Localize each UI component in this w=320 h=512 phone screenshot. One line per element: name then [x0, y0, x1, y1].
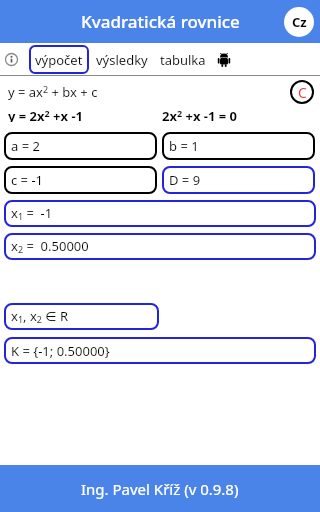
staticText: y = ax2 + bx + c	[8, 83, 98, 101]
staticText: 2x2 +x -1 = 0	[162, 107, 238, 122]
staticText: K = {-1; 0.50000}	[11, 342, 110, 360]
staticText: x1, x2 ∈ R	[11, 307, 69, 326]
button[interactable]	[5, 53, 18, 66]
staticText: C	[298, 83, 307, 102]
staticText: c = -1	[11, 171, 44, 189]
button[interactable]: D = 9	[162, 166, 315, 194]
staticText: Kvadratická rovnice	[81, 10, 240, 33]
staticText: x2 = 0.50000	[11, 237, 89, 256]
button[interactable]: x1 = -1	[4, 200, 316, 227]
button[interactable]: výsledky	[96, 51, 148, 69]
button[interactable]: výpočet	[29, 45, 89, 74]
staticText: výpočet	[35, 51, 83, 69]
staticText: Ing. Pavel Kříž (v 0.9.8)	[81, 479, 239, 499]
staticText: x1 = -1	[11, 204, 53, 223]
button[interactable]: Ing. Pavel Kříž (v 0.9.8)	[0, 465, 320, 512]
button[interactable]: Cz	[284, 7, 314, 37]
staticText: b = 1	[169, 137, 199, 155]
button[interactable]: c = -1	[4, 166, 157, 194]
staticText: tabulka	[160, 51, 206, 69]
button[interactable]: x2 = 0.50000	[4, 233, 316, 260]
staticText: D = 9	[169, 171, 201, 189]
button[interactable]: a = 2	[4, 132, 157, 160]
button[interactable]: C	[290, 80, 314, 104]
button[interactable]: x1, x2 ∈ R	[4, 303, 159, 330]
staticText: Cz	[292, 13, 307, 31]
button[interactable]: K = {-1; 0.50000}	[4, 337, 316, 364]
staticText: a = 2	[11, 137, 40, 155]
button[interactable]	[217, 53, 231, 67]
staticText: y = 2x2 +x -1	[8, 107, 84, 122]
staticText: výsledky	[96, 51, 148, 69]
button[interactable]: tabulka	[160, 51, 206, 69]
button[interactable]: b = 1	[162, 132, 315, 160]
